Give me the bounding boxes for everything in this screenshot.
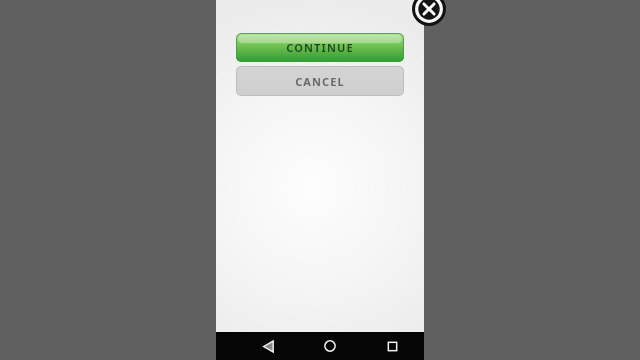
button[interactable]: Close [412,0,446,26]
button[interactable]: Back [254,332,282,360]
staticText: CONTINUE [286,40,354,55]
staticText: CANCEL [295,74,345,89]
button[interactable]: Recents [378,332,406,360]
button[interactable]: CANCEL [236,66,404,96]
button[interactable]: Home [316,332,344,360]
button[interactable]: CONTINUE [236,33,404,62]
